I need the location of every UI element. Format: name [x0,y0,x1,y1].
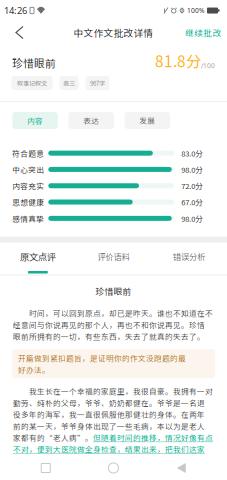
staticText: 83.0分 [181,148,203,159]
staticText: 错误分析 [173,250,205,262]
staticText: /100 [201,61,215,70]
staticText: 100% [187,6,205,15]
staticText: 眼前所拥有的一切，有些东西，失去了就真的失去了。 [13,331,205,342]
staticText: 但随着时间的推移，情况好像有点 [93,432,213,443]
button[interactable]: Recent apps [24,456,68,480]
staticText: 高三 [63,79,75,87]
staticText: 继续批改 [185,26,221,39]
staticText: 感情真挚 [12,213,44,224]
button[interactable]: 表达 [68,112,114,129]
staticText: 叙事记叙文 [17,79,47,87]
staticText: 前的某一天，爷爷身体出现了一些毛病，本以为是老人 [13,420,205,431]
staticText: 中心突出 [12,164,44,175]
staticText: 我生长在一个幸福的家庭里，我很自豪。我拥有一对 [13,385,213,396]
staticText: 时间，可以回到原点，却已是昨天。谁也不知道在不 [13,307,213,318]
staticText: 好办法。 [18,364,50,375]
staticText: 不对，便到大医院做全身检查，结果出来，把我们这家 [13,443,205,454]
staticText: 内容充实 [12,180,44,191]
staticText: 98.0分 [181,213,203,224]
staticText: 符合题意 [12,148,44,159]
staticText: 经意间与你说再见的那个人，再也不和你说再见。珍惜 [13,319,205,330]
staticText: 珍惜眼前 [95,284,131,297]
button[interactable]: 评价语料 [76,250,151,274]
button[interactable]: 继续批改 [185,21,227,44]
staticText: 中文作文批改详情 [73,25,153,39]
button[interactable]: Home [91,456,135,480]
staticText: 81.8分 [155,49,201,72]
staticText: 评价语料 [97,250,129,262]
button[interactable]: Back [159,456,203,480]
button[interactable]: Back [0,21,39,44]
staticText: 67.0分 [181,196,203,207]
staticText: 967字 [90,79,105,87]
button[interactable]: 内容 [12,112,58,129]
staticText: 98.0分 [181,164,203,175]
staticText: 家都有的“老人病”。 [13,432,93,443]
staticText: 内容 [27,115,43,126]
button[interactable]: 错误分析 [151,250,227,274]
staticText: 勤劳、纯朴的父母，爷爷、奶奶都健在。爷爷是一名退 [13,397,205,408]
staticText: 原文点评 [20,250,56,263]
staticText: 表达 [83,115,99,126]
staticText: 14:26 [4,4,27,17]
staticText: 72.0分 [181,180,203,191]
staticText: 思想健康 [12,196,44,207]
staticText: 发展 [139,115,155,126]
button[interactable]: 原文点评 [0,250,76,274]
staticText: 开篇做到紧扣题旨，是证明你的作文没跑题的最 [18,352,186,363]
staticText: 役多年的海军，我一直很佩服他那健壮的身体。在两年 [13,409,205,420]
button[interactable]: 发展 [124,112,170,129]
staticText: 珍惜眼前 [12,55,56,71]
